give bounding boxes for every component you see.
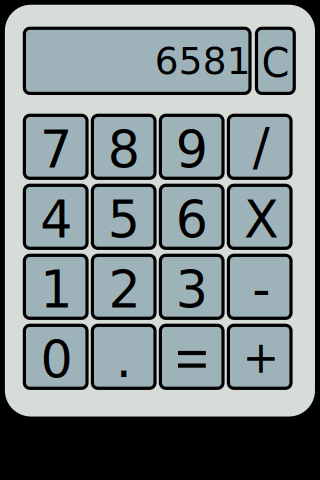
button[interactable]: 0	[24, 325, 87, 388]
button[interactable]: 6581	[24, 28, 250, 93]
staticText: /	[253, 118, 270, 177]
button[interactable]: C	[256, 28, 294, 93]
button[interactable]: X	[228, 185, 291, 248]
staticText: 4	[40, 190, 72, 249]
staticText: +	[242, 332, 279, 383]
staticText: 7	[40, 120, 72, 179]
staticText: 6	[176, 190, 208, 249]
button[interactable]: .	[92, 325, 155, 388]
button[interactable]: 5	[92, 185, 155, 248]
staticText: 8	[108, 120, 140, 179]
button[interactable]: 1	[24, 255, 87, 318]
button[interactable]: +	[228, 325, 291, 388]
staticText: -	[252, 260, 270, 319]
staticText: 9	[176, 120, 208, 179]
button[interactable]	[160, 325, 223, 388]
button[interactable]: 9	[160, 115, 223, 178]
staticText: 6581	[155, 39, 251, 83]
button[interactable]: 6	[160, 185, 223, 248]
button[interactable]: 2	[92, 255, 155, 318]
button[interactable]: 4	[24, 185, 87, 248]
staticText: C	[261, 40, 289, 86]
button[interactable]: 8	[92, 115, 155, 178]
staticText: 1	[40, 260, 72, 319]
button[interactable]: /	[228, 115, 291, 178]
button[interactable]: -	[228, 255, 291, 318]
staticText: 3	[176, 260, 208, 319]
staticText: 5	[108, 190, 140, 249]
staticText: 2	[108, 260, 140, 319]
button[interactable]: 3	[160, 255, 223, 318]
staticText: .	[116, 330, 132, 389]
staticText: X	[244, 190, 279, 249]
button[interactable]: 7	[24, 115, 87, 178]
staticText: 0	[40, 330, 72, 389]
